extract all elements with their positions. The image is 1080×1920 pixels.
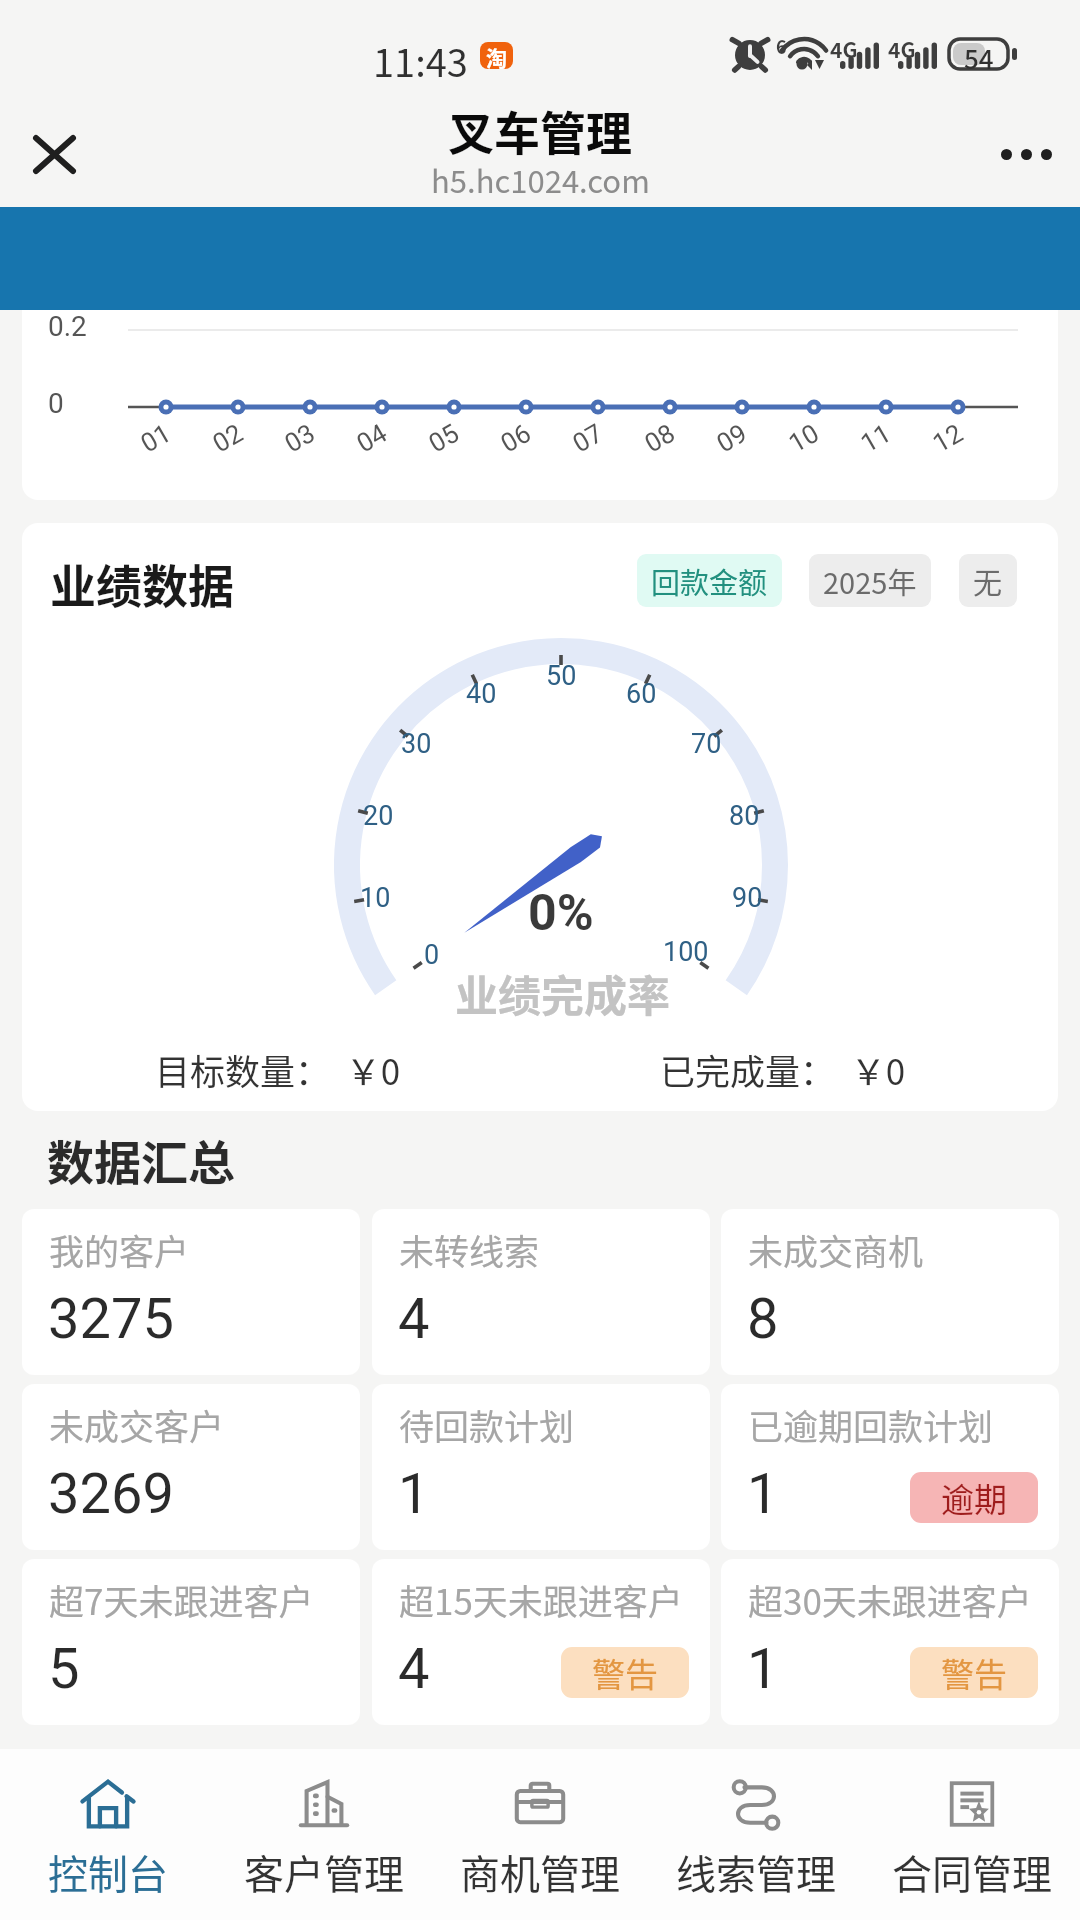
button[interactable]: 已逾期回款计划 (721, 1384, 1059, 1550)
staticText: 线索管理 (676, 1843, 836, 1901)
staticText: 70 (691, 728, 722, 760)
staticText: 3275 (48, 1286, 174, 1352)
staticText: 4 (398, 1636, 430, 1702)
button[interactable]: 客户管理 (216, 1749, 432, 1920)
staticText: 无 (973, 560, 1003, 602)
staticText: 12 (927, 417, 968, 458)
staticText: 0 (424, 939, 440, 971)
staticText: 0 (48, 387, 64, 420)
button[interactable]: 未转线索 (372, 1209, 710, 1375)
staticText: 08 (639, 417, 680, 458)
staticText: 50 (546, 660, 577, 692)
staticText: 4 (398, 1286, 430, 1352)
button[interactable]: 关闭 (14, 114, 94, 194)
button[interactable]: 2025年 (809, 554, 931, 607)
staticText: 3269 (48, 1461, 174, 1527)
staticText: 04 (351, 417, 392, 458)
staticText: 4G (888, 34, 916, 64)
staticText: 100 (663, 936, 709, 968)
staticText: h5.hc1024.com (431, 157, 650, 202)
staticText: 1 (747, 1636, 779, 1702)
staticText: 我的客户 (49, 1224, 190, 1275)
staticText: 未成交客户 (49, 1399, 225, 1450)
staticText: 02 (207, 417, 248, 458)
button[interactable]: 更多 (986, 114, 1066, 194)
staticText: 40 (466, 678, 497, 710)
staticText: 07 (567, 417, 608, 458)
button[interactable]: 合同管理 (864, 1749, 1080, 1920)
button[interactable]: 未成交客户 (22, 1384, 360, 1550)
staticText: 8 (747, 1286, 779, 1352)
button[interactable]: 控制台 (0, 1749, 216, 1920)
staticText: 0% (528, 884, 594, 943)
staticText: 淘 (486, 42, 507, 69)
staticText: 05 (423, 417, 464, 458)
staticText: 业绩完成率 (455, 962, 670, 1022)
staticText: 警告 (941, 1649, 1007, 1697)
staticText: 09 (711, 417, 752, 458)
staticText: 已逾期回款计划 (748, 1399, 994, 1450)
button[interactable]: 回款金额 (637, 554, 782, 607)
staticText: 10 (360, 882, 391, 914)
staticText: 超30天未跟进客户 (748, 1574, 1032, 1625)
staticText: 商机管理 (460, 1843, 620, 1901)
button[interactable]: 待回款计划 (372, 1384, 710, 1550)
button[interactable]: 商机管理 (432, 1749, 648, 1920)
staticText: 逾期 (941, 1474, 1007, 1522)
staticText: 2025年 (823, 560, 917, 602)
staticText: 业绩数据 (50, 550, 234, 617)
button[interactable]: 超7天未跟进客户 (22, 1559, 360, 1725)
button[interactable]: 无 (959, 554, 1017, 607)
staticText: 已完成量： ￥0 (660, 1044, 906, 1095)
staticText: 6 (776, 33, 787, 59)
staticText: 数据汇总 (47, 1125, 235, 1193)
staticText: 11:43 (373, 33, 468, 88)
staticText: 控制台 (48, 1843, 168, 1901)
staticText: 10 (783, 417, 824, 458)
button[interactable]: 线索管理 (648, 1749, 864, 1920)
staticText: 未成交商机 (748, 1224, 924, 1275)
button[interactable]: 我的客户 (22, 1209, 360, 1375)
staticText: 03 (279, 417, 320, 458)
button[interactable]: 未成交商机 (721, 1209, 1059, 1375)
staticText: 54 (964, 39, 994, 69)
staticText: 20 (363, 800, 394, 832)
staticText: 超7天未跟进客户 (49, 1574, 314, 1625)
staticText: 0.2 (48, 310, 87, 343)
button[interactable]: 超15天未跟进客户 (372, 1559, 710, 1725)
staticText: 90 (732, 882, 763, 914)
staticText: 30 (401, 728, 432, 760)
staticText: 5 (48, 1636, 80, 1702)
staticText: 1 (398, 1461, 430, 1527)
staticText: 回款金额 (651, 560, 768, 602)
staticText: 待回款计划 (399, 1399, 575, 1450)
staticText: 06 (495, 417, 536, 458)
staticText: 80 (729, 800, 760, 832)
button[interactable]: 超30天未跟进客户 (721, 1559, 1059, 1725)
staticText: 未转线索 (399, 1224, 540, 1275)
staticText: 1 (747, 1461, 779, 1527)
staticText: 目标数量： ￥0 (155, 1044, 401, 1095)
staticText: 警告 (592, 1649, 658, 1697)
staticText: 合同管理 (892, 1843, 1052, 1901)
staticText: 叉车管理 (448, 97, 632, 164)
staticText: 01 (135, 417, 176, 458)
staticText: 客户管理 (244, 1843, 404, 1901)
staticText: 11 (855, 417, 896, 458)
staticText: 4G (830, 34, 858, 64)
staticText: 60 (626, 678, 657, 710)
staticText: 超15天未跟进客户 (399, 1574, 683, 1625)
